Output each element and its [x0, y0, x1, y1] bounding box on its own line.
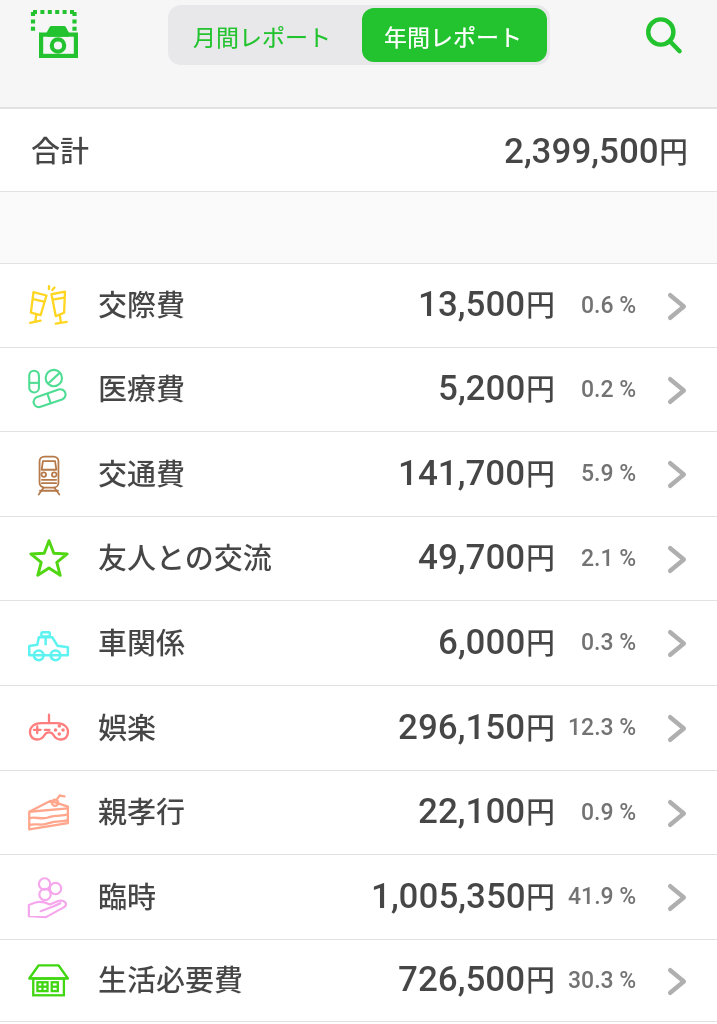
button[interactable]: 臨時 — [0, 855, 717, 940]
button[interactable]: 親孝行 — [0, 771, 717, 855]
staticText: 0.2 % — [581, 376, 637, 403]
staticText: 12.3 % — [568, 714, 637, 741]
staticText: 友人との交流 — [98, 535, 272, 577]
staticText: 交通費 — [98, 451, 186, 493]
button[interactable]: Search — [630, 1, 698, 69]
staticText: 49,700 — [418, 537, 526, 578]
staticText: 年間レポート — [384, 19, 522, 52]
staticText: 医療費 — [98, 366, 186, 408]
staticText: 726,500 — [398, 959, 526, 1000]
button[interactable]: 合計 — [0, 109, 717, 192]
staticText: 円 — [526, 620, 556, 662]
button[interactable]: 交際費 — [0, 264, 717, 348]
staticText: 2,399,500 — [504, 131, 659, 172]
staticText: 円 — [526, 874, 556, 916]
staticText: 5,200 — [438, 368, 526, 409]
button[interactable]: 年間レポート — [362, 8, 547, 62]
staticText: 円 — [526, 789, 556, 831]
staticText: 車関係 — [98, 620, 186, 662]
staticText: 臨時 — [98, 874, 157, 916]
staticText: 0.6 % — [581, 292, 637, 319]
staticText: 22,100 — [418, 791, 526, 832]
button[interactable]: 交通費 — [0, 432, 717, 517]
staticText: 円 — [526, 535, 556, 577]
staticText: 1,005,350 — [371, 876, 526, 917]
button[interactable]: 娯楽 — [0, 686, 717, 771]
staticText: 交際費 — [98, 282, 186, 324]
staticText: 円 — [526, 451, 556, 493]
button[interactable]: 友人との交流 — [0, 517, 717, 601]
staticText: 円 — [659, 129, 689, 171]
staticText: 円 — [526, 366, 556, 408]
staticText: 141,700 — [398, 453, 526, 494]
staticText: 30.3 % — [568, 967, 637, 994]
button[interactable]: 医療費 — [0, 348, 717, 432]
staticText: 円 — [526, 705, 556, 747]
staticText: 0.3 % — [581, 629, 637, 656]
staticText: 合計 — [31, 128, 90, 170]
staticText: 41.9 % — [568, 883, 637, 910]
staticText: 5.9 % — [581, 460, 637, 487]
button[interactable]: 生活必要費 — [0, 940, 717, 1022]
staticText: 月間レポート — [193, 19, 331, 52]
staticText: 0.9 % — [581, 799, 637, 826]
staticText: 親孝行 — [98, 789, 186, 831]
staticText: 6,000 — [438, 622, 526, 663]
staticText: 13,500 — [418, 284, 526, 325]
staticText: 296,150 — [398, 707, 526, 748]
button[interactable]: 月間レポート — [168, 5, 362, 65]
staticText: 円 — [526, 957, 556, 999]
staticText: 生活必要費 — [98, 957, 244, 999]
staticText: 円 — [526, 282, 556, 324]
button[interactable]: Camera — [21, 0, 89, 68]
staticText: 2.1 % — [581, 545, 637, 572]
button[interactable]: 車関係 — [0, 601, 717, 686]
staticText: 娯楽 — [98, 705, 157, 747]
